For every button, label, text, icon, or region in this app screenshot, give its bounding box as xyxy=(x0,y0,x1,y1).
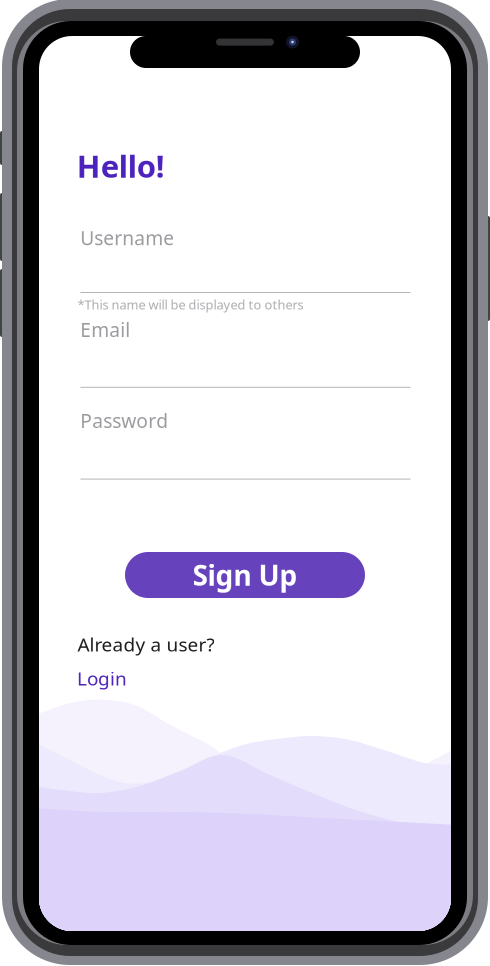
button[interactable]: Sign Up xyxy=(125,552,365,598)
staticText: Hello! xyxy=(77,145,165,187)
staticText: Sign Up xyxy=(192,556,297,594)
staticText: Email xyxy=(80,316,130,343)
staticText: *This name will be displayed to others xyxy=(77,296,303,313)
staticText: Username xyxy=(80,225,174,251)
staticText: Already a user? xyxy=(77,631,214,657)
staticText: Password xyxy=(80,407,168,434)
button[interactable]: Login xyxy=(77,665,127,691)
staticText: Login xyxy=(77,665,127,691)
